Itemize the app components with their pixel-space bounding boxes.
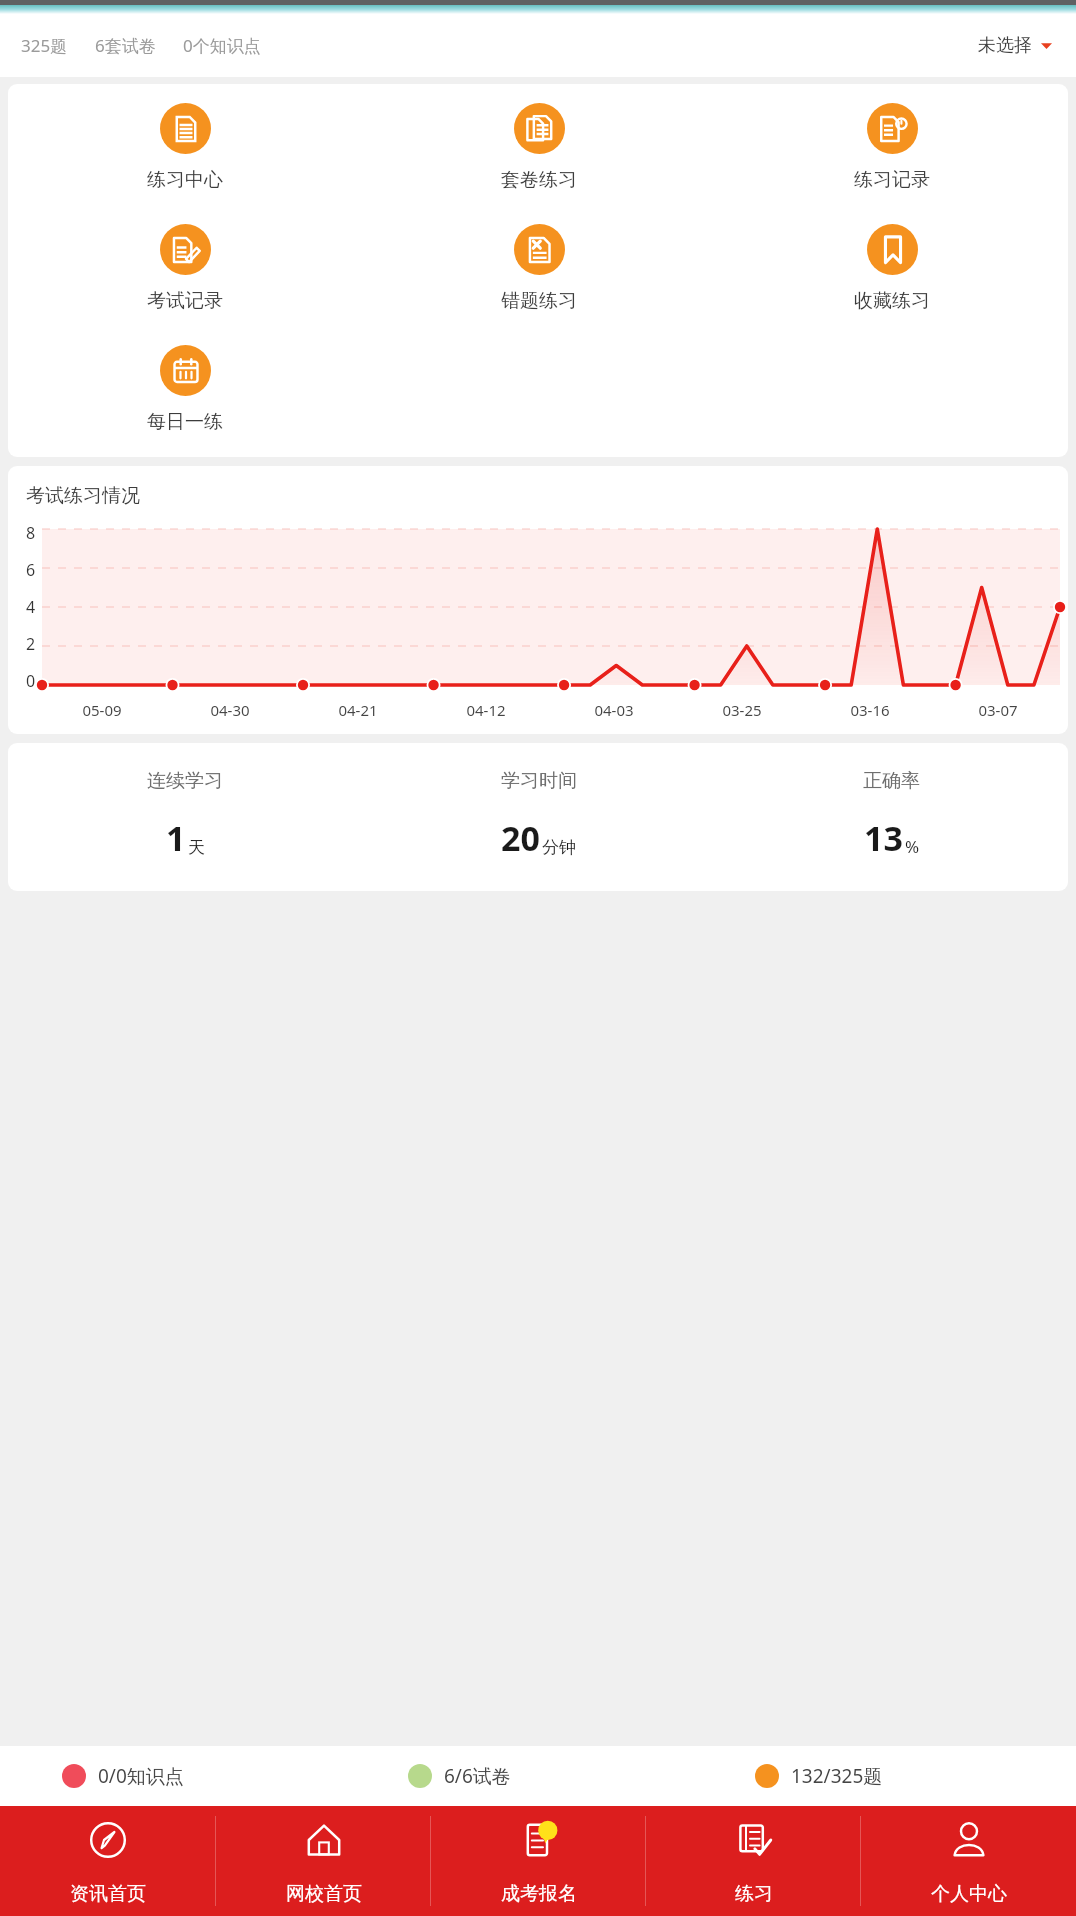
- staticText: 132/325题: [791, 1763, 883, 1789]
- staticText: 6: [26, 559, 36, 581]
- button[interactable]: 练习中心: [137, 100, 233, 195]
- staticText: 正确率: [863, 769, 920, 793]
- staticText: 325题: [21, 34, 68, 57]
- staticText: 05-09: [38, 700, 166, 720]
- button[interactable]: 练习: [646, 1806, 861, 1916]
- button[interactable]: 每日一练: [137, 342, 233, 437]
- staticText: 连续学习: [147, 769, 223, 793]
- button[interactable]: 连续学习: [8, 769, 362, 861]
- staticText: 0个知识点: [183, 34, 261, 57]
- button[interactable]: 个人中心: [861, 1806, 1076, 1916]
- staticText: 练习记录: [854, 168, 930, 192]
- staticText: 4: [26, 596, 36, 618]
- staticText: 练习中心: [147, 168, 223, 192]
- staticText: 0/0知识点: [98, 1763, 184, 1789]
- staticText: 04-21: [294, 700, 422, 720]
- staticText: 学习时间: [501, 769, 577, 793]
- staticText: 每日一练: [147, 410, 223, 434]
- staticText: 练习: [735, 1882, 773, 1906]
- staticText: 收藏练习: [854, 289, 930, 313]
- staticText: 6套试卷: [95, 34, 156, 57]
- staticText: %: [905, 835, 920, 858]
- staticText: 未选择: [978, 34, 1032, 57]
- staticText: 04-03: [550, 700, 678, 720]
- staticText: 个人中心: [931, 1882, 1007, 1906]
- staticText: 2: [26, 633, 36, 655]
- staticText: 8: [26, 522, 36, 544]
- staticText: 13: [864, 815, 903, 861]
- button[interactable]: 未选择: [974, 30, 1056, 61]
- staticText: 考试练习情况: [26, 484, 140, 508]
- staticText: 考试记录: [147, 289, 223, 313]
- staticText: 网校首页: [286, 1882, 362, 1906]
- staticText: 03-16: [806, 700, 934, 720]
- button[interactable]: 学习时间: [362, 769, 715, 861]
- staticText: 天: [188, 837, 205, 858]
- staticText: 分钟: [542, 837, 576, 858]
- button[interactable]: 错题练习: [491, 221, 587, 316]
- staticText: 套卷练习: [501, 168, 577, 192]
- button[interactable]: 资讯首页: [0, 1806, 216, 1916]
- staticText: 04-12: [422, 700, 550, 720]
- button[interactable]: 考试记录: [137, 221, 233, 316]
- button[interactable]: 套卷练习: [491, 100, 587, 195]
- staticText: 03-25: [678, 700, 806, 720]
- staticText: 错题练习: [501, 289, 577, 313]
- staticText: 6/6试卷: [444, 1763, 511, 1789]
- staticText: 0: [26, 670, 36, 692]
- staticText: 资讯首页: [70, 1882, 146, 1906]
- staticText: 03-07: [934, 700, 1062, 720]
- staticText: 成考报名: [501, 1882, 577, 1906]
- button[interactable]: 成考报名: [431, 1806, 646, 1916]
- button[interactable]: 练习记录: [844, 100, 940, 195]
- button[interactable]: 网校首页: [216, 1806, 431, 1916]
- staticText: 04-30: [166, 700, 294, 720]
- button[interactable]: 收藏练习: [844, 221, 940, 316]
- staticText: 1: [166, 815, 186, 861]
- button[interactable]: 正确率: [715, 769, 1068, 861]
- staticText: 20: [501, 815, 540, 861]
